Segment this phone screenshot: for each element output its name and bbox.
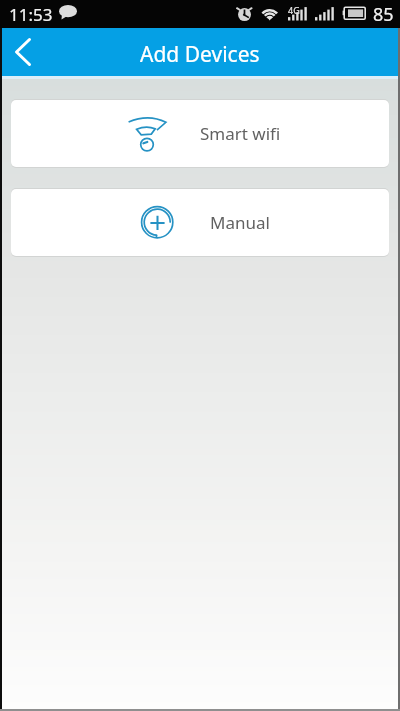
- staticText: 11:53: [9, 3, 53, 26]
- button[interactable]: Back: [0, 28, 46, 76]
- staticText: 85: [373, 2, 394, 27]
- button[interactable]: Smart wifi: [11, 100, 389, 167]
- staticText: Manual: [210, 211, 270, 234]
- staticText: 4G: [288, 4, 300, 16]
- button[interactable]: Manual: [11, 189, 389, 256]
- staticText: Smart wifi: [200, 122, 281, 145]
- staticText: Add Devices: [140, 40, 260, 69]
